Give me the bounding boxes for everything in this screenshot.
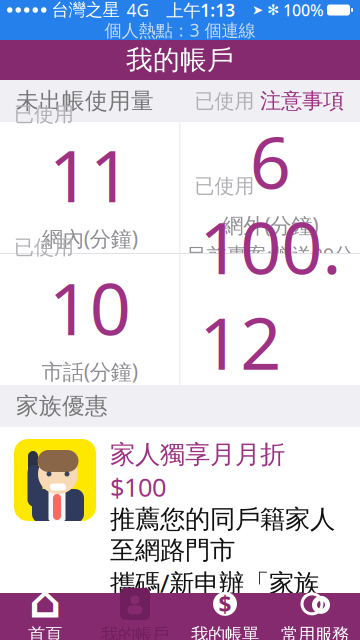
staticText: ⌂ xyxy=(29,576,61,628)
button[interactable]: 我的帳戶 xyxy=(90,592,180,640)
staticText: 已使用 xyxy=(14,102,74,127)
staticText: 已使用 xyxy=(194,89,254,113)
staticText: 未出帳使用量 xyxy=(16,87,154,115)
staticText: $ xyxy=(218,589,231,619)
button[interactable]: 家人獨享月月折$100 xyxy=(0,427,360,640)
staticText: 100.12 xyxy=(199,198,341,390)
button[interactable]: ⌂ xyxy=(0,592,90,640)
staticText: 攜碼/新申辦「家族省」指定專 xyxy=(110,566,319,631)
staticText: 11 xyxy=(49,126,131,222)
staticText: 已使用 xyxy=(194,174,254,198)
staticText: 台灣之星 xyxy=(51,0,119,21)
staticText: 已使用 xyxy=(14,235,74,260)
staticText: 家族優惠 xyxy=(16,392,108,420)
staticText: 100% xyxy=(283,0,324,21)
staticText: 目前專案:上網吃到飽 xyxy=(188,422,353,473)
button[interactable]: $ xyxy=(180,592,270,640)
staticText: 目前專案:講到飽 xyxy=(17,254,162,281)
staticText: 個人熱點：3 個連線 xyxy=(104,18,255,41)
staticText: 注意事項 xyxy=(260,88,344,114)
staticText: 10 xyxy=(49,259,131,355)
staticText: 我的帳戶 xyxy=(101,624,169,640)
staticText: 推薦您的同戶籍家人至網路門市 xyxy=(110,504,335,566)
staticText: 網內(分鐘) xyxy=(42,224,138,252)
staticText: 6 xyxy=(250,113,291,209)
staticText: 家人可享每月月租折$100 xyxy=(160,631,310,640)
button[interactable]: 注意事項 xyxy=(260,88,344,114)
staticText: 無優惠分鐘數 xyxy=(30,387,150,412)
staticText: 我的帳單 xyxy=(191,624,259,640)
staticText: 網外(分鐘) xyxy=(222,211,318,239)
staticText: 首頁 xyxy=(28,624,62,640)
staticText: 上午1:13 xyxy=(166,0,235,21)
staticText: 目前專案:贈送20分鐘/月 xyxy=(187,241,354,294)
staticText: 家人獨享月月折$100 xyxy=(110,439,285,504)
staticText: 常用服務 xyxy=(281,624,349,640)
staticText: ✻ xyxy=(267,2,279,18)
button[interactable]: 常用服務 xyxy=(270,592,360,640)
staticText: 4G xyxy=(126,0,149,21)
staticText: 我的帳戶 xyxy=(126,44,234,76)
staticText: 市話(分鐘) xyxy=(42,357,138,385)
staticText: ➤ xyxy=(252,2,263,17)
